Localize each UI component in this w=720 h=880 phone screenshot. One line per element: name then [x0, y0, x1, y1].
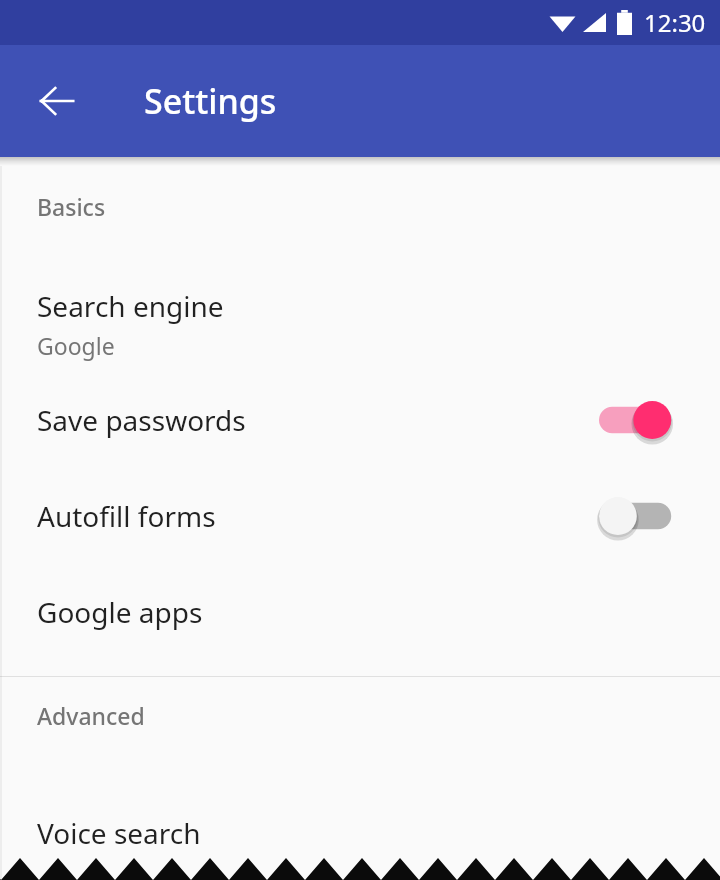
staticText: Save passwords [37, 401, 599, 439]
staticText: Basics [37, 191, 106, 222]
button[interactable]: Back [21, 65, 93, 137]
staticText: Advanced [37, 700, 145, 731]
staticText: Search engine [37, 287, 224, 325]
staticText: Google [37, 330, 115, 361]
button[interactable]: Voice search [0, 785, 720, 880]
staticText: Voice search [37, 814, 201, 852]
staticText: Autofill forms [37, 497, 599, 535]
button[interactable]: Save passwords [0, 372, 720, 468]
button[interactable]: Google apps [0, 564, 720, 660]
button[interactable]: Autofill forms [0, 468, 720, 564]
button[interactable]: Search engine [0, 276, 720, 372]
staticText: Settings [144, 78, 277, 124]
staticText: 12:30 [644, 6, 706, 39]
staticText: Google apps [37, 593, 203, 631]
